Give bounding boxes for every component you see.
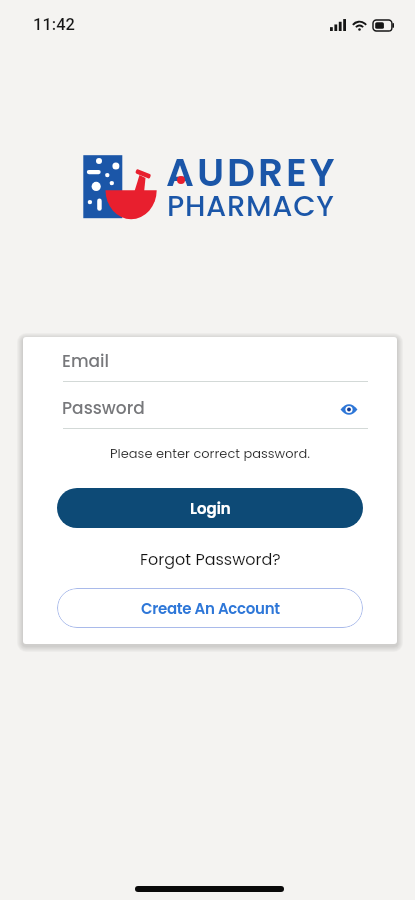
button[interactable]: Create An Account — [57, 588, 363, 628]
staticText: AUDREY — [166, 145, 338, 200]
button[interactable]: Login — [57, 488, 363, 528]
staticText: PHARMACY — [167, 186, 335, 227]
button[interactable]: Forgot Password? — [140, 548, 281, 570]
staticText: Create An Account — [141, 598, 280, 619]
staticText: 11:42 — [33, 15, 75, 34]
staticText: Login — [190, 498, 231, 519]
staticText: Password — [62, 396, 145, 420]
staticText: Forgot Password? — [140, 548, 281, 570]
staticText: Email — [62, 349, 110, 373]
staticText: Please enter correct password. — [110, 444, 310, 462]
button[interactable]: Show password — [335, 398, 363, 420]
